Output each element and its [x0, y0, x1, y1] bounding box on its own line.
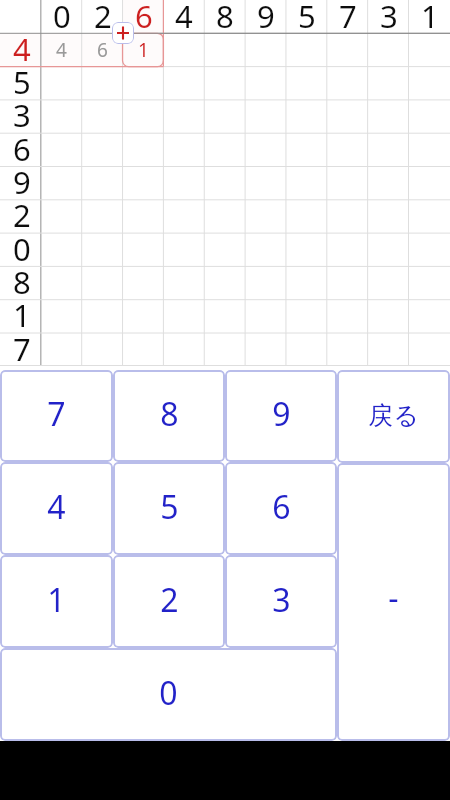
button[interactable]: 戻る [337, 370, 450, 463]
button[interactable]: 6 [123, 0, 164, 28]
button[interactable]: 1 [0, 555, 113, 648]
staticText: 2 [94, 0, 112, 28]
button[interactable]: 4 [41, 33, 82, 66]
staticText: 9 [13, 161, 31, 194]
button[interactable]: 9 [245, 0, 286, 28]
button[interactable]: 9 [1, 161, 42, 194]
button[interactable]: 3 [1, 94, 42, 127]
staticText: 0 [159, 671, 178, 715]
staticText: 1 [421, 0, 439, 28]
button[interactable]: 3 [225, 555, 337, 648]
button[interactable]: 0 [41, 0, 82, 28]
button[interactable]: 5 [113, 462, 225, 555]
staticText: 4 [175, 0, 193, 28]
staticText: 0 [13, 228, 31, 261]
button[interactable]: 0 [1, 228, 42, 261]
button[interactable]: 5 [1, 61, 42, 94]
button[interactable]: 1 [1, 294, 42, 327]
button[interactable]: 8 [113, 370, 225, 462]
staticText: 8 [216, 0, 234, 28]
button[interactable]: - [337, 463, 450, 741]
button[interactable]: 2 [1, 194, 42, 227]
staticText: 戻る [368, 400, 419, 431]
staticText: 7 [13, 328, 31, 361]
staticText: 4 [56, 37, 67, 63]
button[interactable]: 7 [0, 370, 113, 462]
button[interactable]: 7 [1, 328, 42, 361]
staticText: - [388, 576, 399, 620]
button[interactable]: 2 [82, 0, 123, 28]
button[interactable]: 4 [0, 462, 113, 555]
staticText: 8 [13, 261, 31, 294]
staticText: 9 [257, 0, 275, 28]
button[interactable]: 1 [123, 33, 164, 66]
button[interactable]: 5 [286, 0, 327, 28]
staticText: 0 [53, 0, 71, 28]
staticText: 2 [13, 194, 31, 227]
button[interactable]: 1 [409, 0, 450, 28]
button[interactable]: 6 [82, 33, 123, 66]
staticText: 9 [272, 392, 291, 436]
staticText: 6 [13, 128, 31, 161]
button[interactable]: 9 [225, 370, 337, 462]
staticText: 3 [380, 0, 398, 28]
staticText: 6 [272, 485, 291, 529]
button[interactable]: 8 [1, 261, 42, 294]
staticText: 8 [160, 392, 179, 436]
staticText: 2 [160, 578, 179, 622]
staticText: 4 [13, 28, 31, 61]
button[interactable]: 3 [368, 0, 409, 28]
staticText: 3 [272, 578, 291, 622]
staticText: 1 [47, 578, 66, 622]
staticText: 1 [138, 37, 149, 63]
button[interactable]: Addition operator [112, 22, 134, 44]
button[interactable]: 8 [204, 0, 245, 28]
staticText: 5 [298, 0, 316, 28]
button[interactable]: 2 [113, 555, 225, 648]
button[interactable]: 4 [1, 28, 42, 61]
button[interactable]: 4 [163, 0, 204, 28]
button[interactable]: 0 [0, 648, 337, 741]
staticText: 1 [13, 294, 31, 327]
staticText: 7 [47, 392, 66, 436]
staticText: 7 [339, 0, 357, 28]
button[interactable]: 6 [225, 462, 337, 555]
staticText: 6 [97, 37, 108, 63]
staticText: 3 [13, 94, 31, 127]
button[interactable]: 6 [1, 128, 42, 161]
staticText: 5 [160, 485, 179, 529]
button[interactable]: 7 [327, 0, 368, 28]
staticText: 4 [47, 485, 66, 529]
staticText: 6 [135, 0, 153, 28]
staticText: 5 [13, 61, 31, 94]
